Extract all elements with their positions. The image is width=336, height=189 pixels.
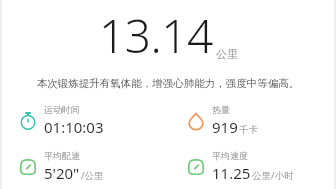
staticText: /公里 [81, 169, 104, 182]
staticText: 11.25 [212, 163, 251, 183]
staticText: 本次锻炼提升有氧体能，增强心肺能力，强度中等偏高。 [14, 77, 322, 90]
staticText: 919 [212, 117, 238, 137]
staticText: 公里 [216, 47, 238, 61]
button[interactable]: Average speed [168, 150, 336, 183]
staticText: 公里/小时 [252, 169, 294, 182]
other: Calories [186, 111, 206, 131]
other: Average pace [18, 157, 38, 177]
staticText: 13.14 [99, 4, 213, 67]
staticText: 千卡 [239, 124, 258, 136]
staticText: 平均配速 [44, 150, 80, 161]
other: Duration [18, 111, 38, 131]
staticText: 平均速度 [212, 150, 248, 161]
staticText: 01:10:03 [44, 117, 104, 137]
staticText: 运动时间 [44, 104, 80, 115]
staticText: 热量 [212, 104, 230, 115]
button[interactable]: Duration [0, 104, 168, 137]
button[interactable]: Calories [168, 104, 336, 137]
button[interactable]: Average pace [0, 150, 168, 183]
staticText: 5'20" [44, 163, 80, 183]
other: Average speed [186, 157, 206, 177]
